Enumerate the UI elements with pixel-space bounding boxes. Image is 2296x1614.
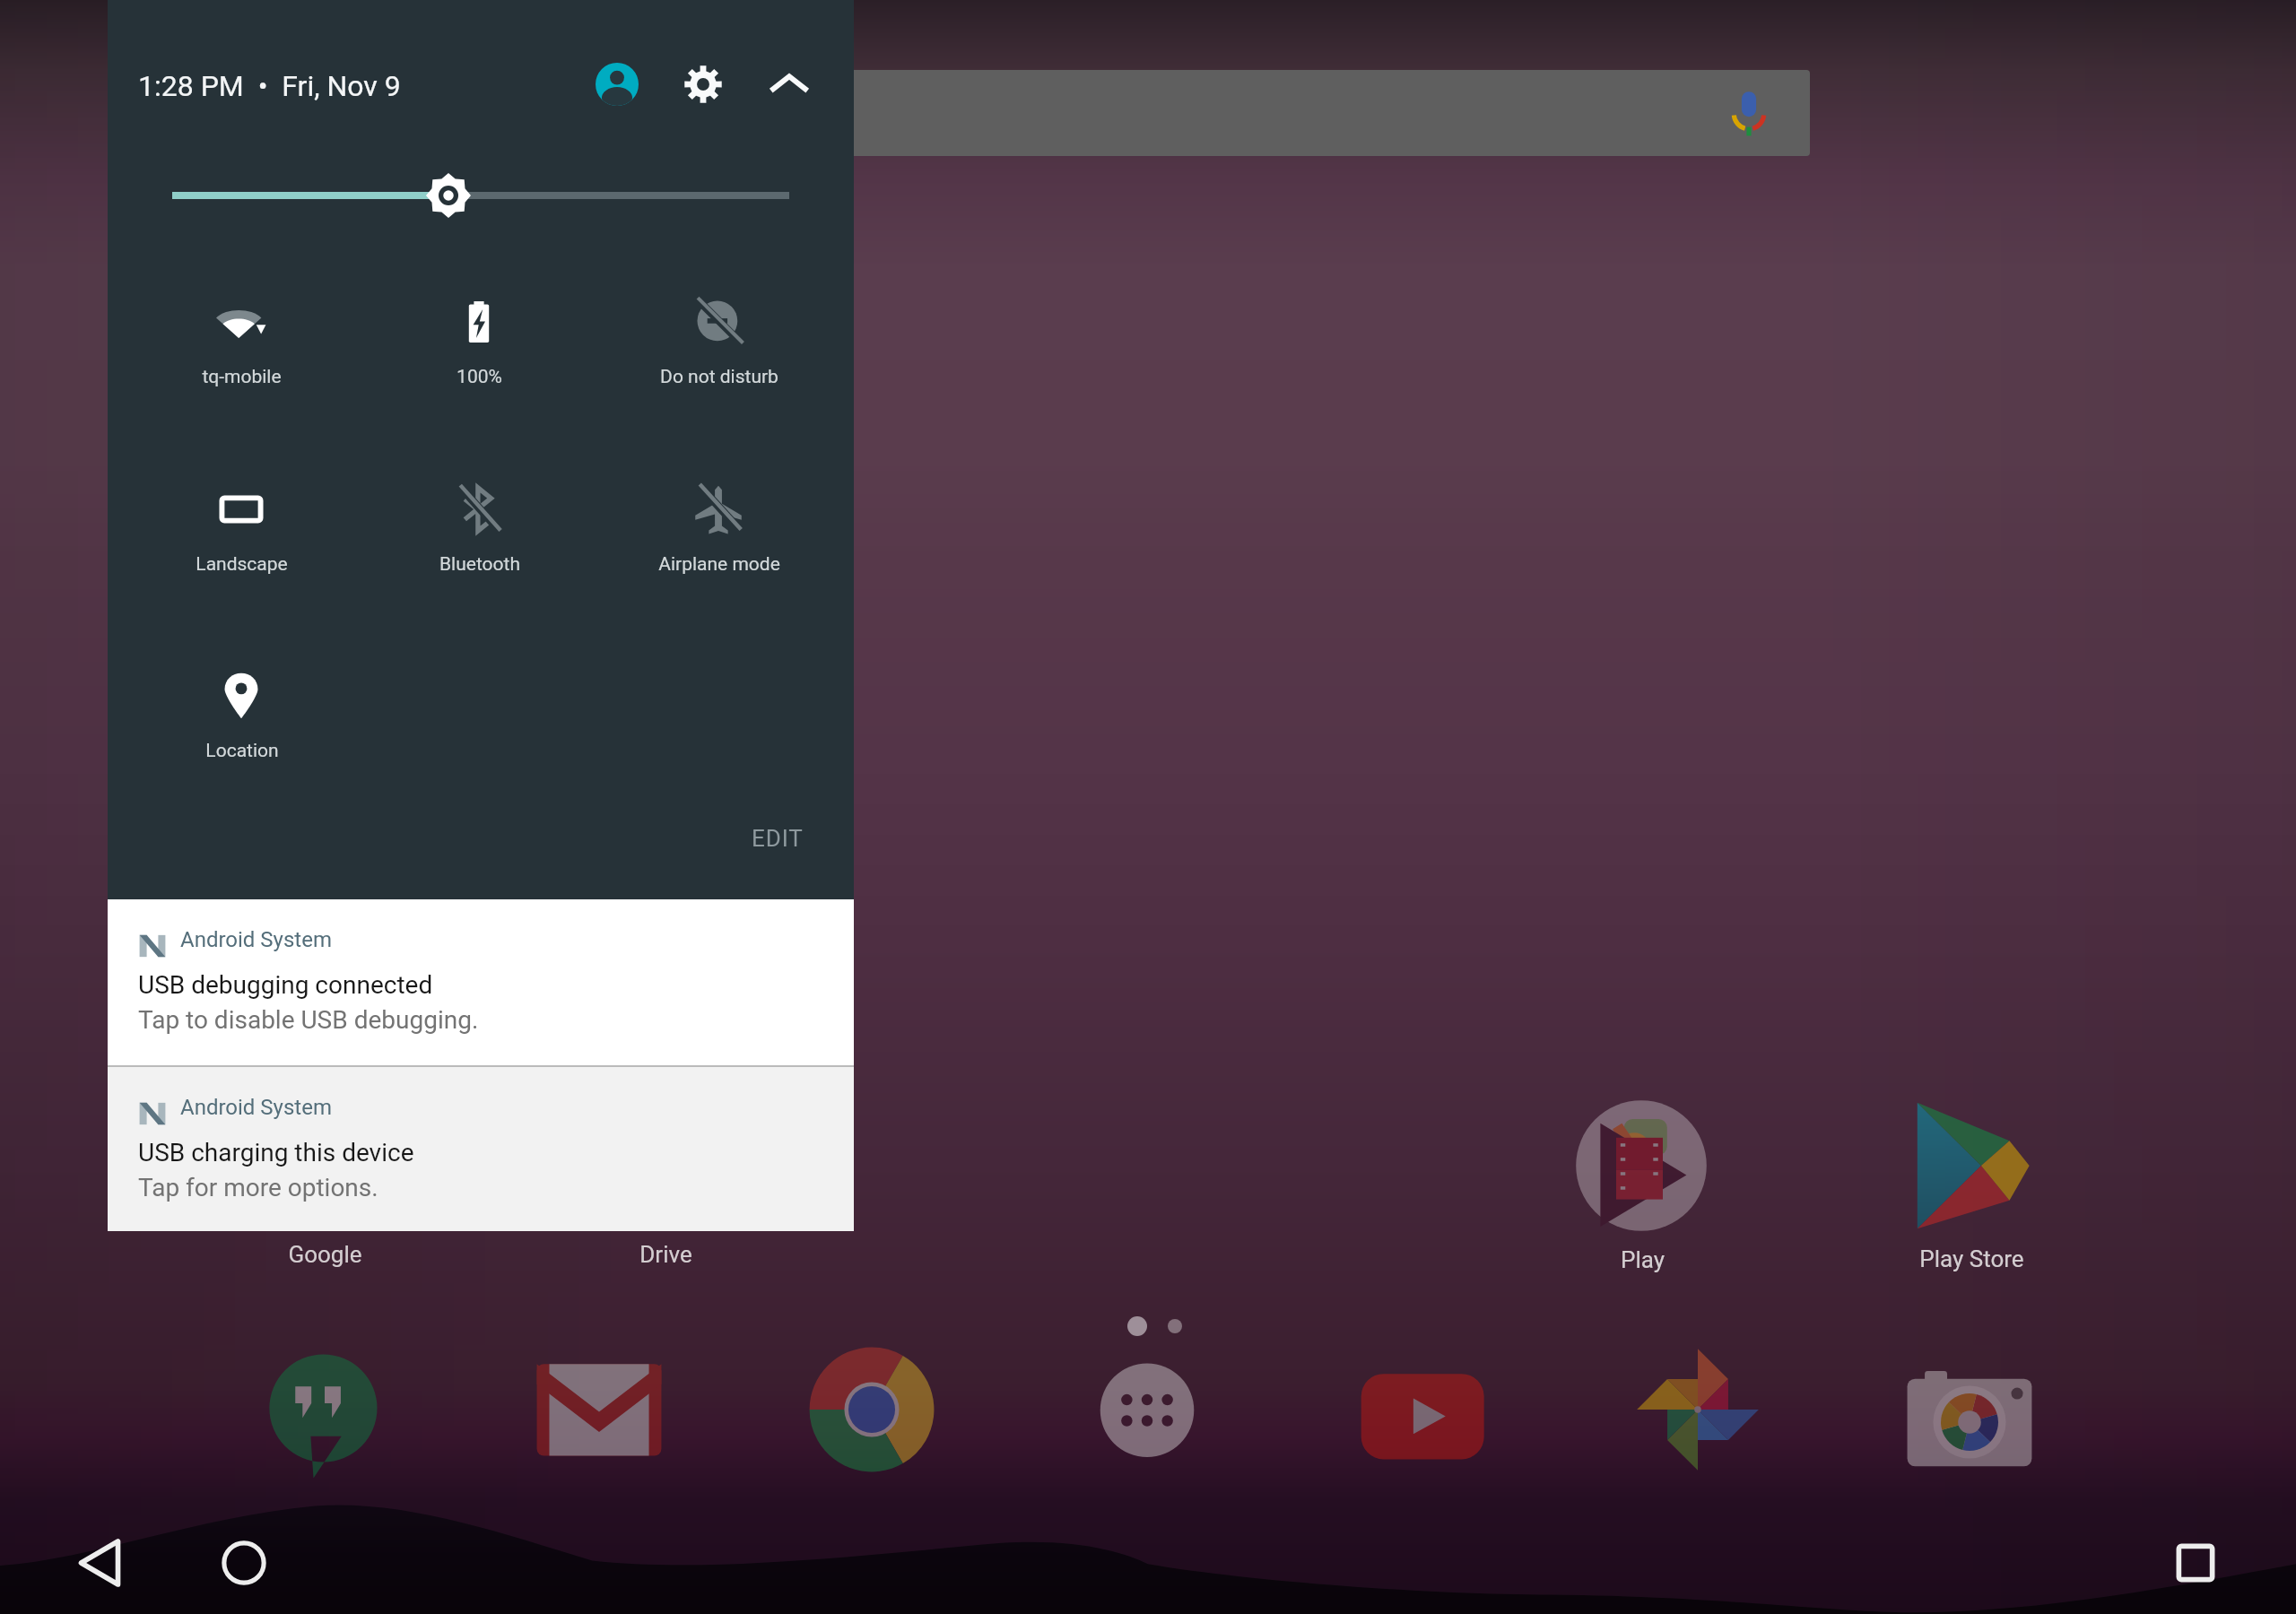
staticText: Tap for more options. bbox=[138, 1173, 378, 1202]
staticText: Landscape bbox=[196, 553, 288, 576]
button[interactable]: Android System bbox=[108, 1067, 854, 1231]
button[interactable]: YouTube bbox=[1352, 1340, 1492, 1479]
button[interactable]: Hangouts bbox=[255, 1340, 395, 1479]
staticText: Do not disturb bbox=[660, 366, 778, 388]
button[interactable]: Home bbox=[181, 1500, 307, 1614]
staticText: Drive bbox=[639, 1241, 692, 1268]
staticText: USB charging this device bbox=[138, 1138, 414, 1167]
button[interactable]: Landscape bbox=[123, 456, 361, 600]
button[interactable]: EDIT bbox=[649, 796, 804, 852]
staticText: Airplane mode bbox=[658, 553, 780, 576]
button[interactable]: Airplane mode bbox=[600, 456, 838, 600]
button[interactable]: Android System bbox=[108, 899, 854, 1065]
staticText: Location bbox=[205, 740, 279, 762]
button[interactable]: Back bbox=[37, 1500, 162, 1614]
staticText: Bluetooth bbox=[439, 553, 520, 576]
staticText: tq-mobile bbox=[202, 366, 282, 388]
button[interactable]: Chrome bbox=[802, 1340, 942, 1479]
button[interactable]: Google search bbox=[160, 70, 1810, 156]
button[interactable]: Collapse bbox=[753, 48, 825, 120]
staticText: Tap to disable USB debugging. bbox=[138, 1005, 479, 1035]
button[interactable]: Camera bbox=[1900, 1340, 2039, 1479]
staticText: EDIT bbox=[752, 825, 804, 852]
button[interactable]: Bluetooth bbox=[361, 456, 598, 600]
button[interactable]: Play Store bbox=[1890, 1095, 2031, 1237]
staticText: USB debugging connected bbox=[138, 970, 433, 1000]
button[interactable]: Photos bbox=[1628, 1340, 1768, 1479]
button[interactable]: User profile bbox=[581, 48, 653, 120]
button[interactable]: Location bbox=[123, 643, 361, 786]
button[interactable]: 100% bbox=[361, 269, 598, 412]
button[interactable]: Play bbox=[1570, 1094, 1713, 1237]
button[interactable]: tq-mobile bbox=[123, 269, 361, 412]
button[interactable]: All apps bbox=[1077, 1340, 1217, 1479]
button[interactable]: Settings bbox=[667, 48, 739, 120]
button[interactable]: Recents bbox=[2133, 1500, 2258, 1614]
staticText: Google bbox=[288, 1241, 362, 1268]
staticText: Play Store bbox=[1919, 1245, 2024, 1272]
staticText: Play bbox=[1621, 1246, 1665, 1273]
staticText: 1:28 PM • Fri, Nov 9 bbox=[138, 69, 401, 103]
staticText: Android System bbox=[180, 927, 332, 952]
staticText: Android System bbox=[180, 1095, 332, 1120]
button[interactable]: Do not disturb bbox=[600, 269, 838, 412]
staticText: 100% bbox=[457, 366, 502, 388]
button[interactable]: Gmail bbox=[529, 1340, 669, 1479]
